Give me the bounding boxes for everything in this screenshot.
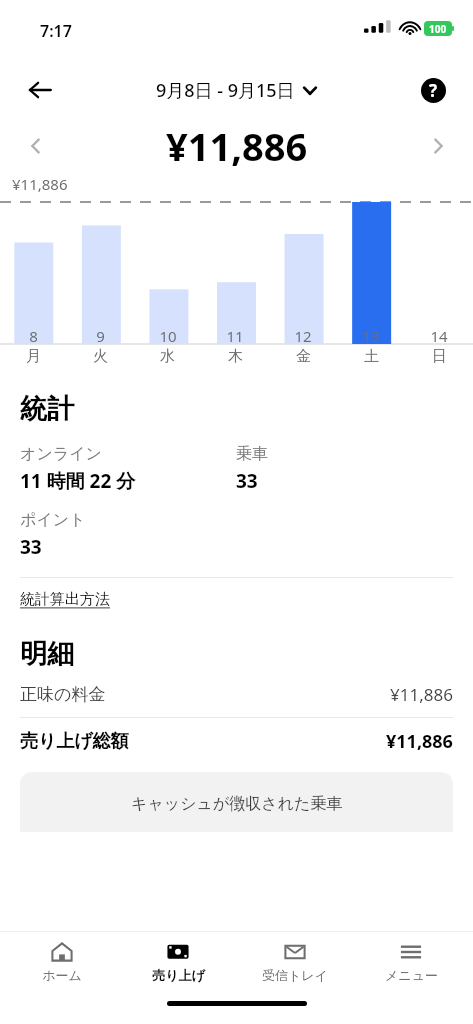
button[interactable]: ホーム	[7, 932, 117, 990]
button[interactable]: 受信トレイ	[240, 932, 350, 990]
staticText: 日	[432, 347, 447, 366]
staticText: 明細	[20, 637, 74, 671]
button[interactable]: 9	[67, 326, 134, 366]
staticText: 100	[429, 22, 447, 36]
staticText: 土	[364, 347, 379, 366]
staticText: ¥11,886	[166, 120, 308, 172]
button[interactable]: 10	[134, 326, 201, 366]
staticText: 乗車	[236, 444, 268, 464]
staticText: 14	[430, 326, 448, 346]
button[interactable]: 前の期間	[14, 125, 56, 167]
staticText: 木	[228, 347, 243, 366]
staticText: 11	[226, 326, 244, 346]
button[interactable]: メニュー	[356, 932, 466, 990]
button[interactable]: 統計算出方法	[20, 590, 110, 609]
staticText: 13	[362, 326, 380, 346]
button[interactable]: 売り上げ	[123, 932, 233, 990]
staticText: 統計算出方法	[20, 590, 110, 609]
staticText: 金	[296, 347, 311, 366]
button[interactable]: 戻る	[18, 68, 62, 112]
staticText: 売り上げ	[152, 967, 205, 983]
staticText: 33	[236, 468, 258, 494]
staticText: 33	[20, 534, 42, 560]
staticText: キャッシュが徴収された乗車	[131, 794, 343, 814]
button[interactable]: 14	[405, 326, 473, 366]
staticText: 9月8日 - 9月15日	[156, 78, 295, 103]
staticText: オンライン	[20, 444, 102, 464]
staticText: 8	[29, 326, 38, 346]
staticText: ホーム	[42, 967, 82, 983]
staticText: 火	[93, 347, 108, 366]
staticText: 7:17	[40, 20, 72, 42]
button[interactable]: ヘルプ	[411, 68, 455, 112]
staticText: 受信トレイ	[262, 967, 328, 983]
staticText: メニュー	[385, 967, 438, 983]
staticText: 9	[96, 326, 105, 346]
staticText: ¥11,886	[12, 174, 68, 194]
staticText: 統計	[20, 392, 74, 426]
staticText: 正味の料金	[20, 684, 390, 705]
staticText: 11 時間 22 分	[20, 468, 136, 494]
staticText: 12	[294, 326, 312, 346]
staticText: 10	[159, 326, 177, 346]
button[interactable]: 12	[269, 326, 337, 366]
button[interactable]: キャッシュが徴収された乗車	[20, 772, 453, 832]
button[interactable]: 次の期間	[417, 125, 459, 167]
button[interactable]: 8	[0, 326, 67, 366]
staticText: ¥11,886	[386, 729, 453, 754]
staticText: 月	[26, 347, 41, 366]
button[interactable]: 11	[201, 326, 269, 366]
staticText: 売り上げ総額	[20, 730, 386, 753]
button[interactable]: 13	[337, 326, 405, 366]
staticText: 水	[160, 347, 175, 366]
staticText: ?	[429, 79, 438, 102]
staticText: ¥11,886	[390, 683, 453, 706]
staticText: ポイント	[20, 510, 86, 530]
button[interactable]: 9月8日 - 9月15日	[156, 78, 317, 103]
